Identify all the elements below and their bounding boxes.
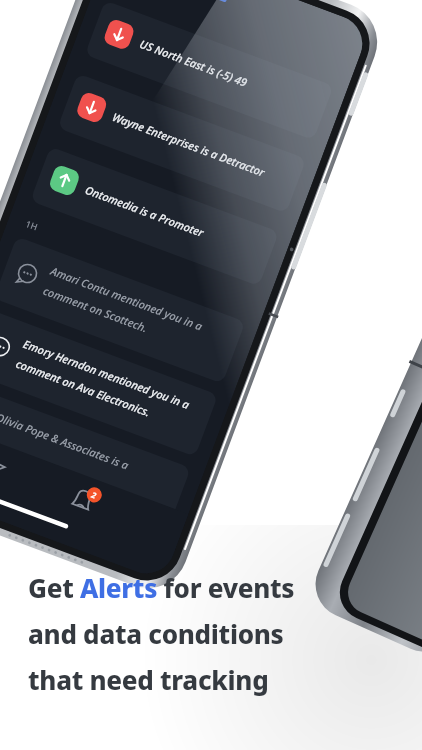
button[interactable]: Get Alerts for events and data condition… <box>0 0 422 750</box>
